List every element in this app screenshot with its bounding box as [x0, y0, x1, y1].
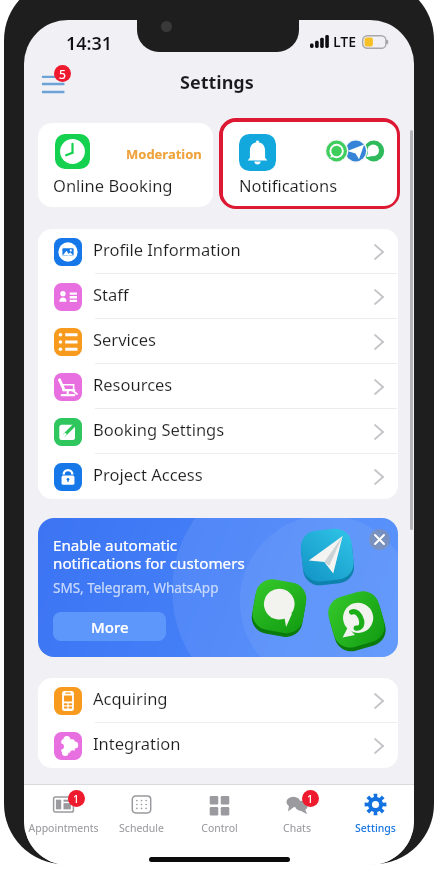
staticText: SMS, Telegram, WhatsApp [53, 579, 219, 597]
button[interactable]: More [53, 612, 166, 641]
staticText: 1 [73, 791, 80, 806]
button[interactable]: Notifications [223, 122, 397, 206]
staticText: Schedule [119, 821, 164, 835]
staticText: Chats [283, 821, 311, 835]
button[interactable]: Services [38, 319, 398, 364]
button[interactable]: Booking Settings [38, 409, 398, 454]
staticText: Acquiring [93, 687, 168, 709]
button[interactable]: Enable automatic notifications for custo… [38, 518, 398, 657]
staticText: 5 [59, 66, 66, 82]
button[interactable]: Close [369, 529, 390, 550]
button[interactable]: 1 [24, 785, 102, 837]
staticText: Resources [93, 373, 173, 395]
staticText: Project Access [93, 463, 203, 485]
button[interactable]: Integration [38, 723, 398, 768]
staticText: 1 [307, 791, 314, 806]
button[interactable]: Control [180, 785, 258, 837]
button[interactable]: Staff [38, 274, 398, 319]
button[interactable]: Settings [336, 785, 414, 837]
staticText: Services [93, 328, 156, 350]
staticText: Booking Settings [93, 418, 225, 440]
staticText: Enable automatic notifications for custo… [53, 535, 245, 573]
button[interactable]: Profile Information [38, 229, 398, 274]
button[interactable]: Project Access [38, 454, 398, 499]
staticText: Notifications [239, 174, 338, 196]
button[interactable]: Moderation [38, 123, 213, 207]
button[interactable]: Resources [38, 364, 398, 409]
button[interactable]: Acquiring [38, 678, 398, 723]
staticText: Online Booking [53, 174, 173, 196]
staticText: Settings [355, 821, 396, 835]
staticText: Control [201, 821, 238, 835]
button[interactable]: Menu [36, 62, 80, 100]
staticText: Moderation [126, 145, 202, 163]
staticText: Appointments [28, 821, 99, 835]
staticText: Settings [180, 70, 254, 95]
staticText: Profile Information [93, 238, 241, 260]
button[interactable]: 1 [258, 785, 336, 837]
staticText: Integration [93, 732, 181, 754]
staticText: More [91, 617, 129, 637]
staticText: 14:31 [66, 31, 113, 56]
staticText: LTE [333, 32, 357, 51]
staticText: Staff [93, 283, 129, 305]
button[interactable]: Schedule [102, 785, 180, 837]
